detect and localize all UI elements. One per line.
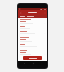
button[interactable] bbox=[20, 39, 45, 43]
button[interactable]: Back bbox=[22, 61, 26, 65]
button[interactable] bbox=[20, 44, 45, 48]
button[interactable]: Navigate up bbox=[18, 10, 23, 15]
button[interactable] bbox=[20, 21, 45, 25]
button[interactable] bbox=[23, 56, 42, 60]
button[interactable] bbox=[20, 31, 45, 35]
button[interactable] bbox=[20, 52, 45, 56]
button[interactable] bbox=[20, 26, 45, 30]
button[interactable]: Home bbox=[31, 61, 35, 65]
button[interactable] bbox=[18, 15, 47, 18]
